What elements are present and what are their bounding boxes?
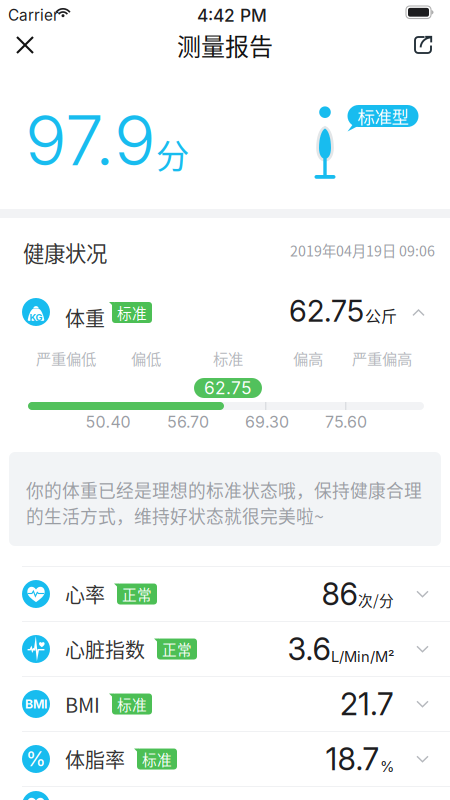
staticText: 心脏指数 <box>65 634 145 663</box>
staticText: Carrier <box>8 6 59 25</box>
staticText: L/Min/M² <box>331 648 394 665</box>
button[interactable]: % <box>0 732 450 786</box>
staticText: 标准 <box>142 748 172 770</box>
staticText: 体脂率 <box>65 744 125 773</box>
staticText: 标准 <box>117 302 147 323</box>
staticText: % <box>26 747 46 771</box>
staticText: 标准 <box>117 693 147 715</box>
staticText: 62.75 <box>204 377 252 398</box>
staticText: 严重偏低 <box>36 347 96 369</box>
staticText: 测量报告 <box>177 28 273 62</box>
staticText: 62.75 <box>289 293 364 329</box>
staticText: 健康状况 <box>23 237 107 268</box>
button[interactable]: Share <box>401 23 445 67</box>
staticText: 97.9 <box>25 98 156 182</box>
staticText: 18.7 <box>325 740 379 777</box>
staticText: 86 <box>321 575 357 612</box>
staticText: BMI <box>65 689 100 718</box>
staticText: 心率 <box>65 579 105 608</box>
staticText: 50.40 <box>85 412 130 432</box>
staticText: KG <box>30 312 43 323</box>
staticText: 标准 <box>213 347 243 369</box>
staticText: 21.7 <box>340 685 394 722</box>
staticText: 69.30 <box>245 412 289 432</box>
staticText: 偏高 <box>293 347 323 369</box>
staticText: 75.60 <box>325 412 367 432</box>
staticText: 体重 <box>65 303 105 332</box>
staticText: 正常 <box>162 638 192 660</box>
staticText: 正常 <box>122 583 152 605</box>
staticText: % <box>380 758 394 775</box>
staticText: 公斤 <box>365 304 397 327</box>
button[interactable]: 心率 <box>0 567 450 621</box>
staticText: 次/分 <box>358 589 394 610</box>
staticText: 分 <box>156 130 189 178</box>
staticText: BMI <box>25 697 47 711</box>
staticText: 严重偏高 <box>352 347 412 369</box>
staticText: 偏低 <box>131 347 161 369</box>
staticText: 3.6 <box>287 630 330 667</box>
button[interactable]: 心脏指数 <box>0 622 450 676</box>
button[interactable]: Close <box>3 23 47 67</box>
staticText: 你的体重已经是理想的标准状态哦，保持健康合理的生活方式，维持好状态就很完美啦~ <box>26 477 422 528</box>
staticText: 标准型 <box>357 103 408 129</box>
button[interactable]: BMI <box>0 677 450 731</box>
staticText: 56.70 <box>167 412 209 432</box>
staticText: 2019年04月19日 09:06 <box>290 240 435 261</box>
staticText: 4:42 PM <box>197 5 267 26</box>
